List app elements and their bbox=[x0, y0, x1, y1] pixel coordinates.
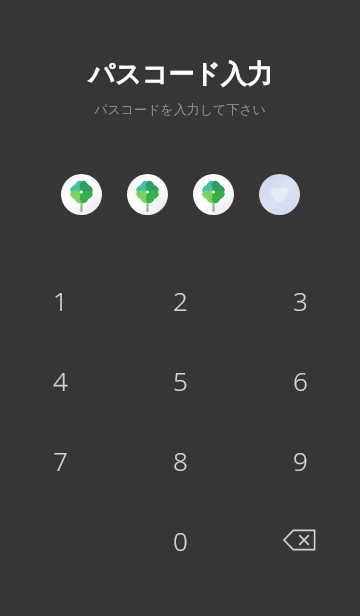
button[interactable]: 7 bbox=[0, 420, 120, 500]
staticText: 8 bbox=[173, 443, 188, 478]
staticText: パスコード入力 bbox=[88, 58, 273, 91]
button[interactable]: 8 bbox=[120, 420, 240, 500]
button[interactable]: 6 bbox=[240, 340, 360, 420]
button[interactable]: 2 bbox=[120, 260, 240, 340]
staticText: 2 bbox=[173, 283, 188, 318]
button[interactable]: 1 bbox=[0, 260, 120, 340]
staticText: 3 bbox=[293, 283, 308, 318]
button[interactable]: Delete bbox=[240, 500, 360, 580]
staticText: 9 bbox=[293, 443, 308, 478]
button[interactable]: 5 bbox=[120, 340, 240, 420]
staticText: パスコードを入力して下さい bbox=[94, 101, 266, 117]
button[interactable]: 3 bbox=[240, 260, 360, 340]
staticText: 5 bbox=[173, 363, 188, 398]
button[interactable]: 0 bbox=[120, 500, 240, 580]
button[interactable]: 4 bbox=[0, 340, 120, 420]
staticText: 4 bbox=[53, 363, 68, 398]
staticText: 1 bbox=[53, 283, 68, 318]
staticText: 0 bbox=[173, 523, 188, 558]
staticText: 7 bbox=[53, 443, 68, 478]
staticText: 6 bbox=[293, 363, 308, 398]
button[interactable]: 9 bbox=[240, 420, 360, 500]
